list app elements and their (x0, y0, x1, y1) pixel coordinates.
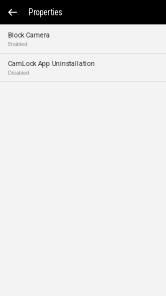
staticText: CamLock App Uninstallation (8, 60, 95, 68)
button[interactable]: Block Camera (0, 25, 166, 53)
staticText: Properties (29, 7, 63, 17)
staticText: Block Camera (8, 31, 50, 39)
staticText: Enabled (8, 40, 27, 47)
button[interactable]: Back (0, 0, 29, 25)
staticText: Disabled (8, 69, 29, 76)
button[interactable]: Properties (29, 0, 63, 25)
button[interactable]: CamLock App Uninstallation (0, 54, 166, 81)
